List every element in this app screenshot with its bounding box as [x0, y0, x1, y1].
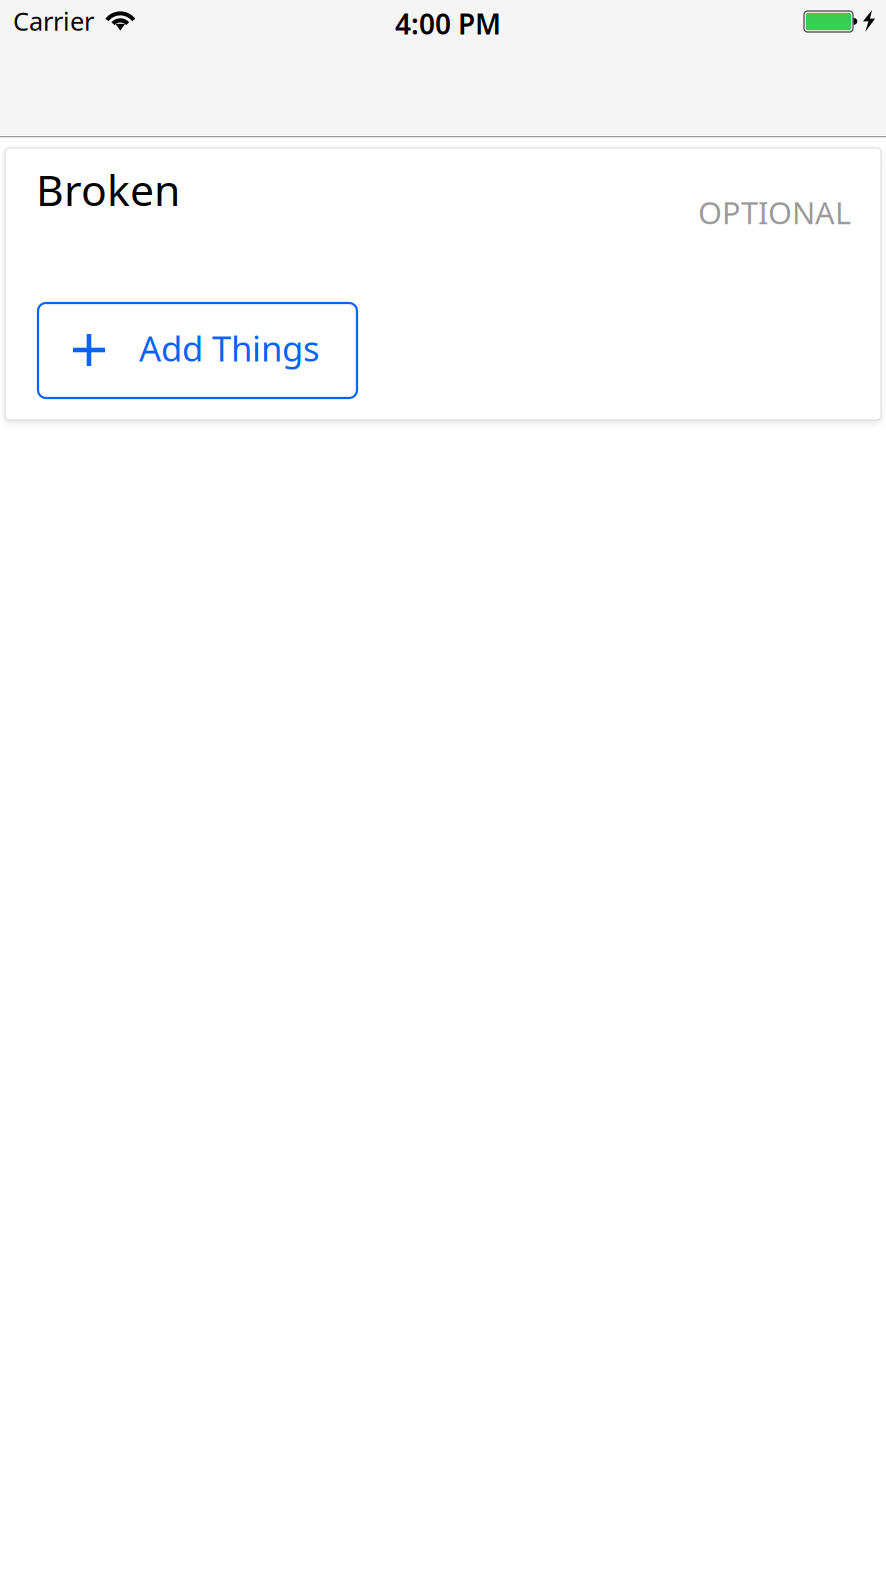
staticText: 4:00 PM [395, 5, 501, 42]
staticText: OPTIONAL [698, 192, 851, 233]
staticText: Add Things [139, 325, 320, 371]
staticText: Carrier [13, 4, 94, 38]
staticText: Broken [36, 161, 180, 218]
button[interactable]: Add Things [38, 303, 357, 398]
